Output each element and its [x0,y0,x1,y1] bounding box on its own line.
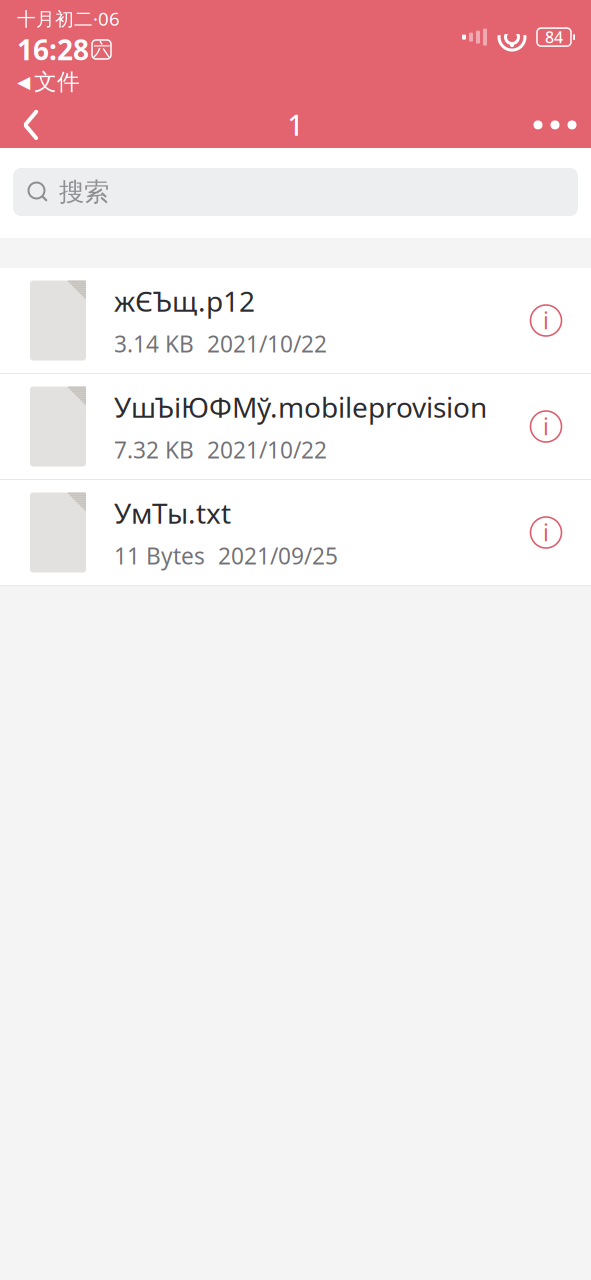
button[interactable]: Back [4,98,58,152]
staticText: ◀ [17,72,30,92]
staticText: i [543,411,549,441]
button[interactable]: жЄЪщ.p12 [0,268,591,373]
staticText: i [543,517,549,547]
button[interactable]: 搜索 [13,168,578,216]
staticText: 84 [545,26,563,48]
staticText: 7.32 KB [114,434,194,465]
staticText: УшЪіЮФМў.mobileprovision [114,388,487,426]
staticText: 1 [287,106,303,143]
staticText: 2021/09/25 [218,540,338,571]
staticText: 十月初二·06 [17,6,120,31]
staticText: 2021/10/22 [207,328,327,359]
staticText: УмТы.txt [114,494,231,532]
button[interactable]: More [523,98,587,152]
staticText: i [543,305,549,335]
staticText: жЄЪщ.p12 [114,282,255,320]
button[interactable]: УмТы.txt [0,480,591,585]
button[interactable]: УшЪіЮФМў.mobileprovision [0,374,591,479]
staticText: 2021/10/22 [207,434,327,465]
staticText: 16:28 [17,31,89,68]
staticText: 文件 [34,68,80,96]
staticText: 六 [93,39,110,60]
staticText: 3.14 KB [114,328,194,359]
staticText: 搜索 [59,176,109,207]
staticText: 11 Bytes [114,540,205,571]
